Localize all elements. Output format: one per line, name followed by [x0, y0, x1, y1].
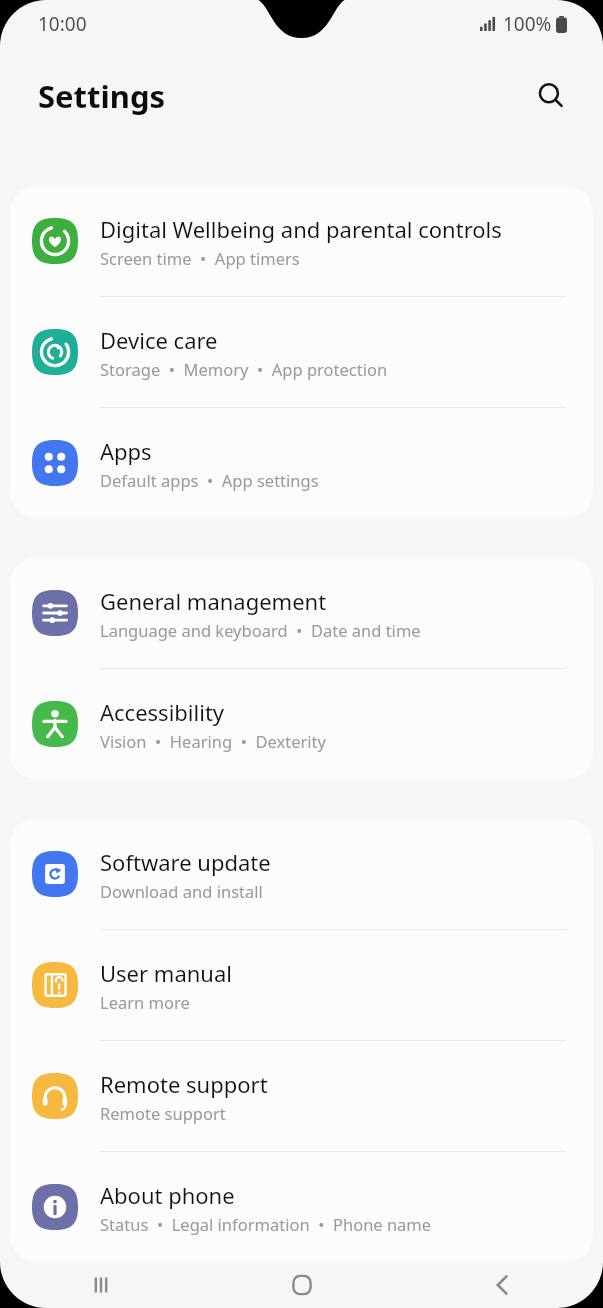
button[interactable]: Apps: [10, 408, 593, 518]
button[interactable]: About phone: [10, 1152, 593, 1262]
staticText: Screen time • App timers: [100, 247, 300, 269]
staticText: Device care: [100, 325, 218, 355]
staticText: Accessibility: [100, 697, 225, 727]
staticText: Learn more: [100, 991, 190, 1013]
button[interactable]: Recents: [0, 1262, 201, 1308]
button[interactable]: Remote support: [10, 1041, 593, 1151]
button[interactable]: User manual: [10, 930, 593, 1040]
staticText: Vision • Hearing • Dexterity: [100, 730, 326, 752]
button[interactable]: Digital Wellbeing and parental controls: [10, 186, 593, 296]
staticText: About phone: [100, 1180, 235, 1210]
staticText: Digital Wellbeing and parental controls: [100, 214, 502, 244]
staticText: Language and keyboard • Date and time: [100, 619, 421, 641]
staticText: 10:00: [38, 11, 87, 37]
staticText: Download and install: [100, 880, 263, 902]
button[interactable]: Accessibility: [10, 669, 593, 779]
staticText: Settings: [38, 75, 166, 117]
staticText: Status • Legal information • Phone name: [100, 1213, 432, 1235]
button[interactable]: Device care: [10, 297, 593, 407]
staticText: Apps: [100, 436, 152, 466]
staticText: Default apps • App settings: [100, 469, 319, 491]
button[interactable]: Back: [402, 1262, 603, 1308]
button[interactable]: General management: [10, 558, 593, 668]
staticText: Software update: [100, 847, 271, 877]
staticText: Remote support: [100, 1069, 268, 1099]
staticText: User manual: [100, 958, 232, 988]
staticText: Storage • Memory • App protection: [100, 358, 388, 380]
staticText: General management: [100, 586, 327, 616]
staticText: Remote support: [100, 1102, 226, 1124]
button[interactable]: Home: [201, 1262, 402, 1308]
staticText: 100%: [503, 11, 552, 37]
button[interactable]: Search: [525, 70, 577, 122]
button[interactable]: Software update: [10, 819, 593, 929]
